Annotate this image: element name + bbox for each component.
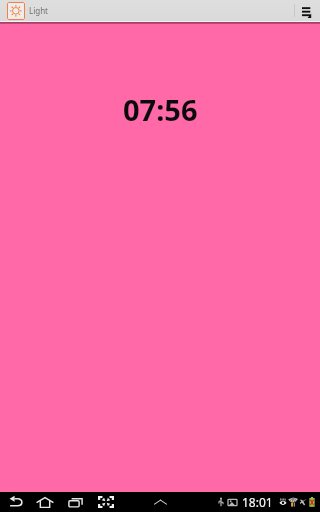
button[interactable]: More options [295,0,320,21]
button[interactable]: Light surface, tap to change colour [0,24,320,492]
button[interactable]: Show hidden icons [149,492,171,512]
button[interactable]: Screenshot [93,492,119,512]
button[interactable]: Recent apps [63,492,88,512]
staticText: 18:01 [242,494,273,510]
staticText: 07:56 [123,90,198,129]
button[interactable]: Light [0,0,320,21]
button[interactable]: Back [4,492,28,512]
button[interactable]: Home [31,492,59,512]
staticText: Light [29,5,49,16]
